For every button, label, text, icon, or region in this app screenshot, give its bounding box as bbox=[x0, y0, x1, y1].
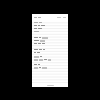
button[interactable]: Home bbox=[46, 84, 55, 87]
button[interactable]: Share bbox=[57, 16, 61, 19]
button[interactable]: More options bbox=[63, 16, 66, 19]
button[interactable] bbox=[34, 16, 41, 19]
